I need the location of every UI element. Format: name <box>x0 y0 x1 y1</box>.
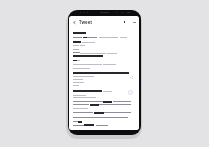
button[interactable]: Menu <box>131 19 137 25</box>
button[interactable]: Tweet <box>79 19 93 25</box>
button[interactable]: Back <box>71 19 77 25</box>
staticText: Tweet <box>79 19 93 25</box>
button[interactable]: Profile <box>127 89 134 96</box>
button[interactable]: Options <box>121 19 127 25</box>
button[interactable]: Share <box>128 74 134 80</box>
